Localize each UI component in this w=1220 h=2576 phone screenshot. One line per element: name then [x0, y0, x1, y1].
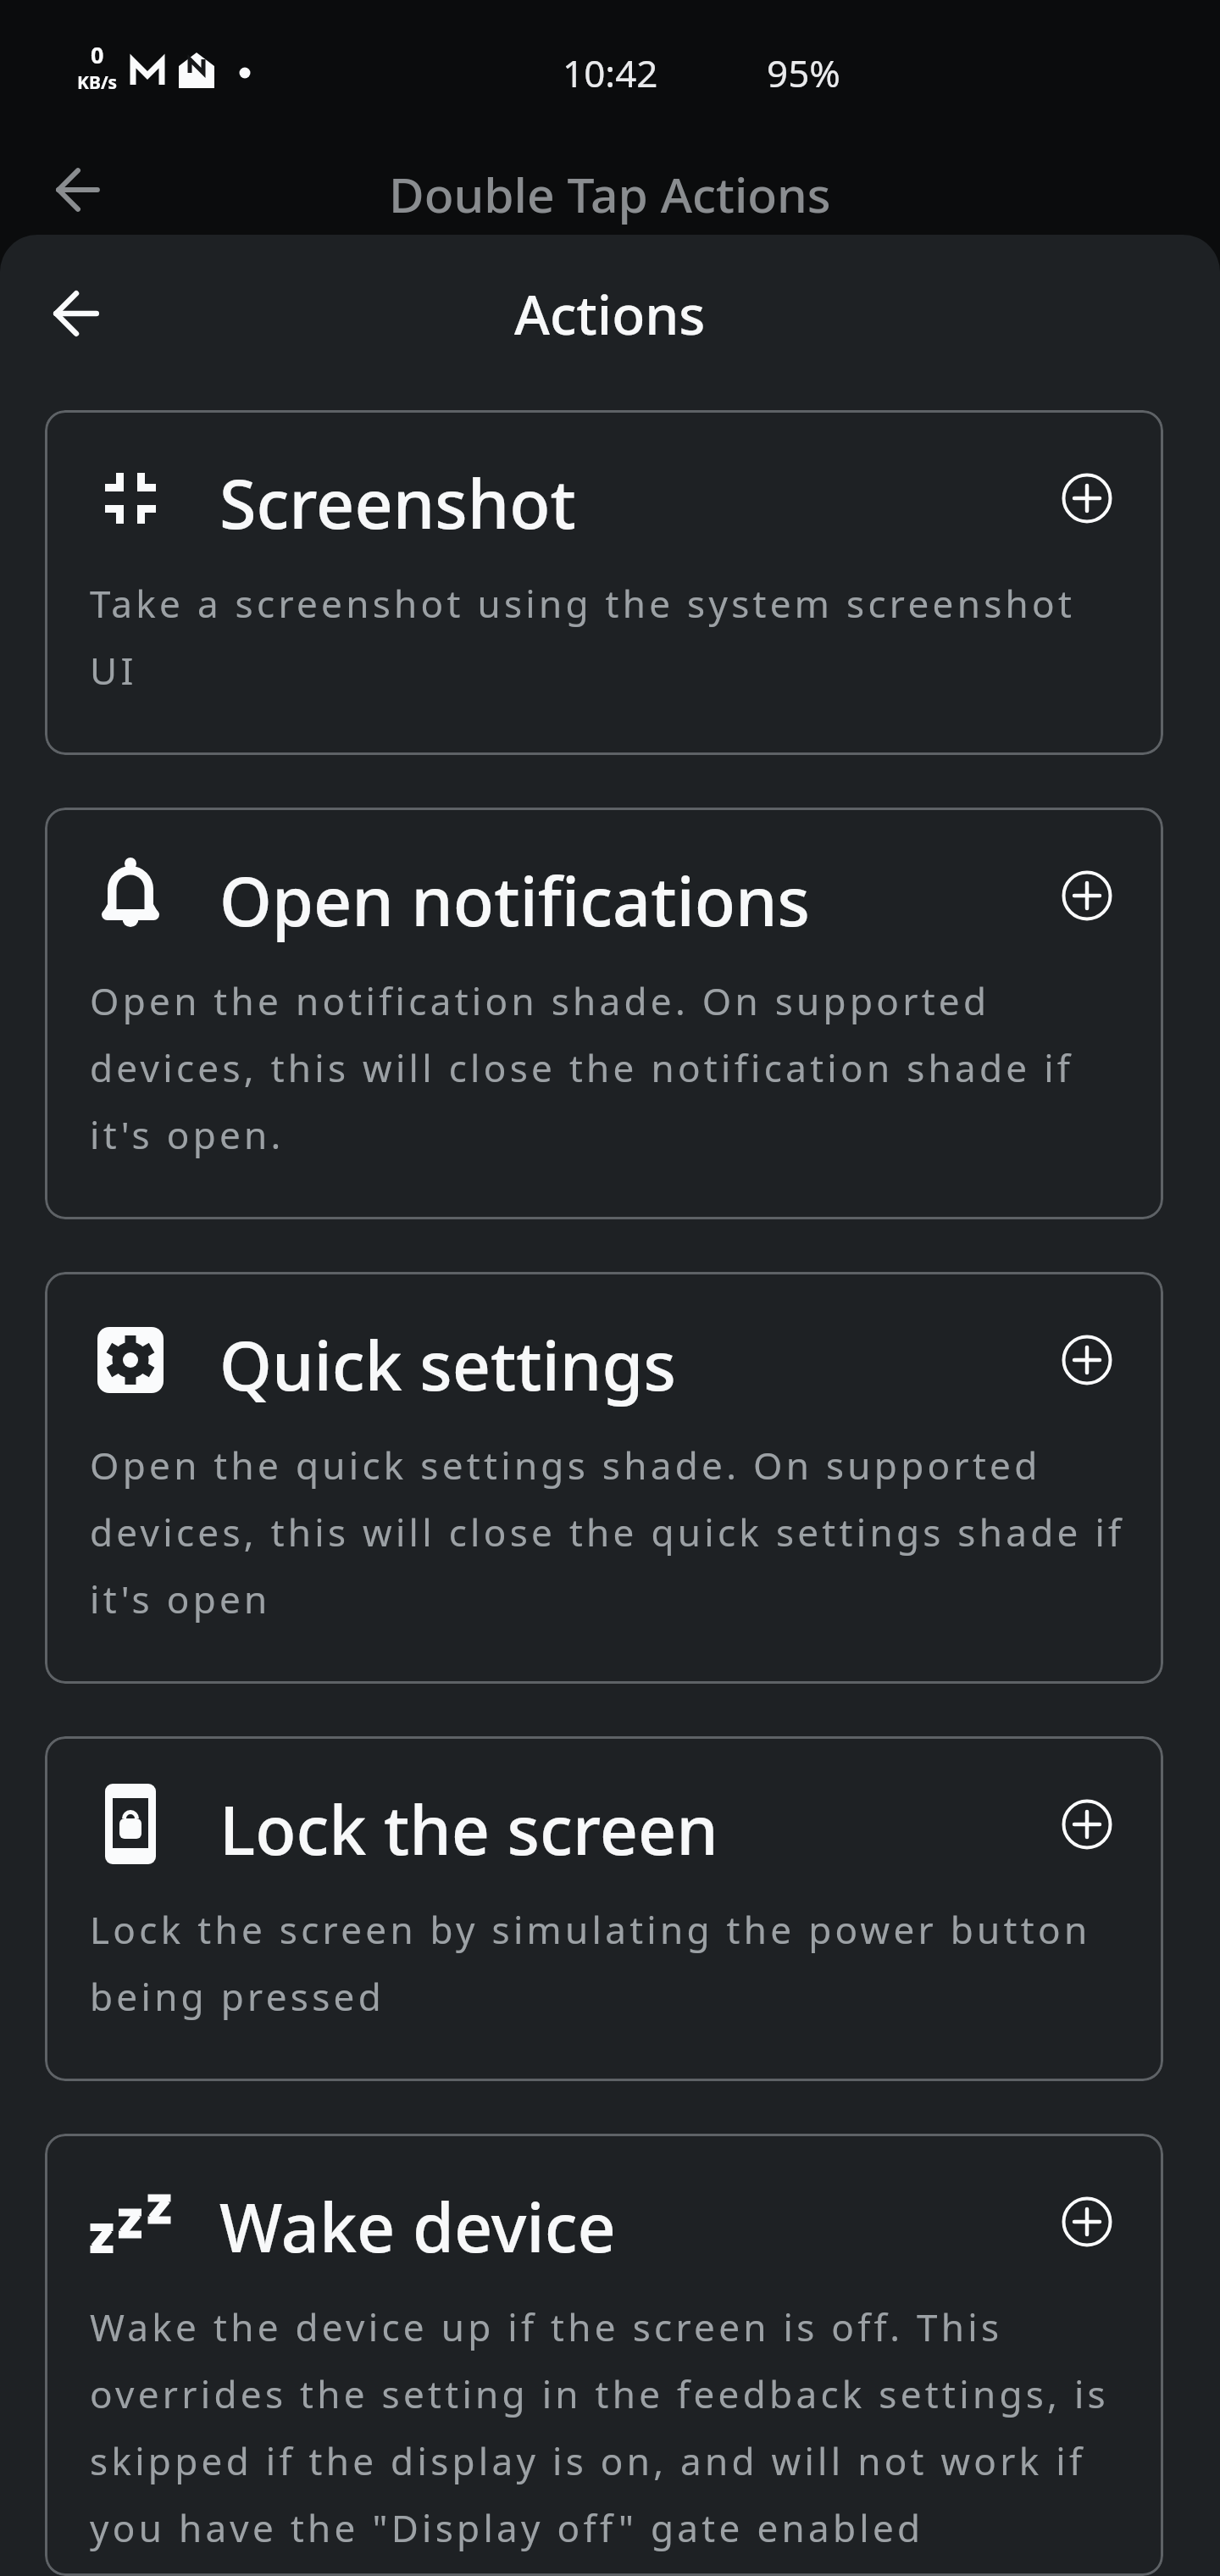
- button[interactable]: Lock the screen: [45, 1736, 1163, 2081]
- button[interactable]: [1062, 1335, 1112, 1385]
- staticText: Actions: [514, 277, 706, 351]
- staticText: Open the quick settings shade. On suppor…: [90, 1440, 1112, 1624]
- button[interactable]: [1062, 2196, 1112, 2247]
- button[interactable]: [1062, 473, 1112, 524]
- staticText: Lock the screen: [219, 1784, 718, 1865]
- button[interactable]: Open notifications: [45, 808, 1163, 1219]
- staticText: Wake device: [219, 2181, 616, 2262]
- staticText: Double Tap Actions: [389, 161, 831, 227]
- button[interactable]: Quick settings: [45, 1272, 1163, 1684]
- staticText: 10:42: [563, 47, 658, 92]
- staticText: Screenshot: [219, 458, 576, 539]
- button[interactable]: Screenshot: [45, 410, 1163, 755]
- button[interactable]: [1062, 870, 1112, 921]
- staticText: Open notifications: [219, 855, 810, 936]
- staticText: 0: [91, 39, 104, 70]
- button[interactable]: [1062, 1799, 1112, 1850]
- staticText: Open the notification shade. On supporte…: [90, 975, 1074, 1160]
- staticText: 95%: [767, 47, 840, 92]
- staticText: Take a screenshot using the system scree…: [90, 578, 1076, 696]
- button[interactable]: [53, 291, 99, 336]
- staticText: Wake the device up if the screen is off.…: [90, 2301, 1109, 2540]
- staticText: Quick settings: [219, 1319, 676, 1401]
- button[interactable]: Wake device: [45, 2134, 1163, 2576]
- staticText: KB/s: [77, 70, 118, 95]
- staticText: Lock the screen by simulating the power …: [90, 1904, 1091, 2022]
